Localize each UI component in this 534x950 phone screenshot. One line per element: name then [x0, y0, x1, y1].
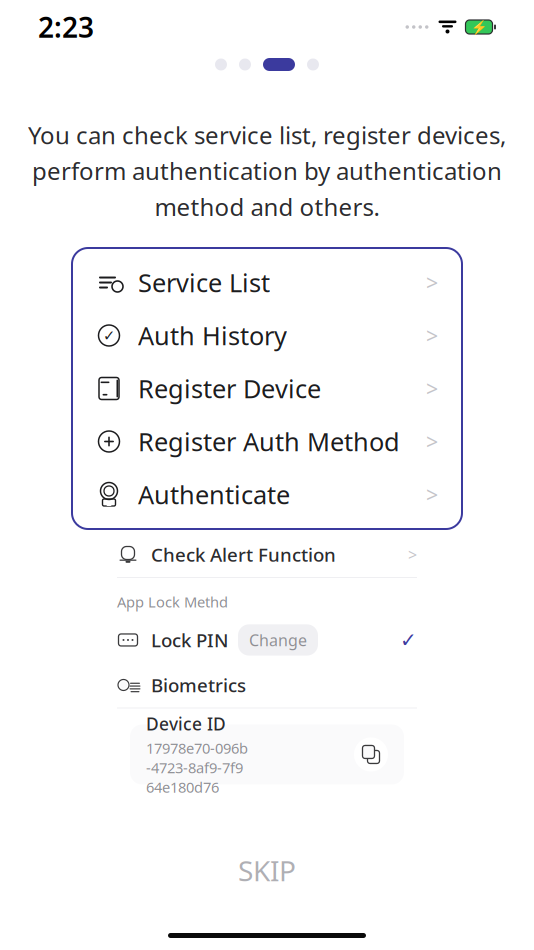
button[interactable]: Service List [72, 256, 462, 309]
button[interactable]: Biometrics [99, 662, 435, 707]
button[interactable]: Device ID [130, 724, 404, 784]
staticText: Device ID [146, 712, 226, 735]
staticText: Auth History [138, 319, 287, 352]
button[interactable]: Register Device [72, 362, 462, 415]
staticText: Biometrics [151, 673, 246, 697]
staticText: > [408, 544, 417, 565]
staticText: Register Auth Method [138, 425, 400, 458]
staticText: Change [249, 629, 307, 651]
staticText: Lock PIN [151, 628, 228, 652]
staticText: 17978e70-096b-4723-8af9-7f964e180d76 [146, 738, 248, 797]
button[interactable]: Check Alert Function [99, 532, 435, 577]
staticText: Service List [138, 266, 270, 299]
staticText: App Lock Methd [117, 592, 228, 611]
staticText: > [426, 427, 438, 456]
staticText: Check Alert Function [151, 542, 336, 567]
button[interactable]: ✓ [72, 309, 462, 362]
staticText: You can check service list, register dev… [28, 119, 506, 151]
staticText: 2:23 [38, 8, 94, 46]
staticText: ✓ [400, 629, 417, 651]
button[interactable]: SKIP [198, 840, 336, 901]
staticText: ✓ [103, 327, 115, 344]
staticText: > [426, 374, 438, 403]
button[interactable]: Register Auth Method [72, 415, 462, 468]
button[interactable]: Lock PIN [99, 617, 435, 662]
staticText: Authenticate [138, 478, 290, 511]
staticText: Register Device [138, 372, 321, 405]
staticText: > [426, 268, 438, 297]
staticText: > [426, 321, 438, 350]
staticText: ⚡ [470, 19, 487, 35]
button[interactable]: Authenticate [72, 468, 462, 521]
staticText: SKIP [238, 852, 296, 889]
staticText: > [426, 480, 438, 509]
staticText: perform authentication by authentication [32, 155, 502, 187]
staticText: method and others. [154, 191, 379, 223]
